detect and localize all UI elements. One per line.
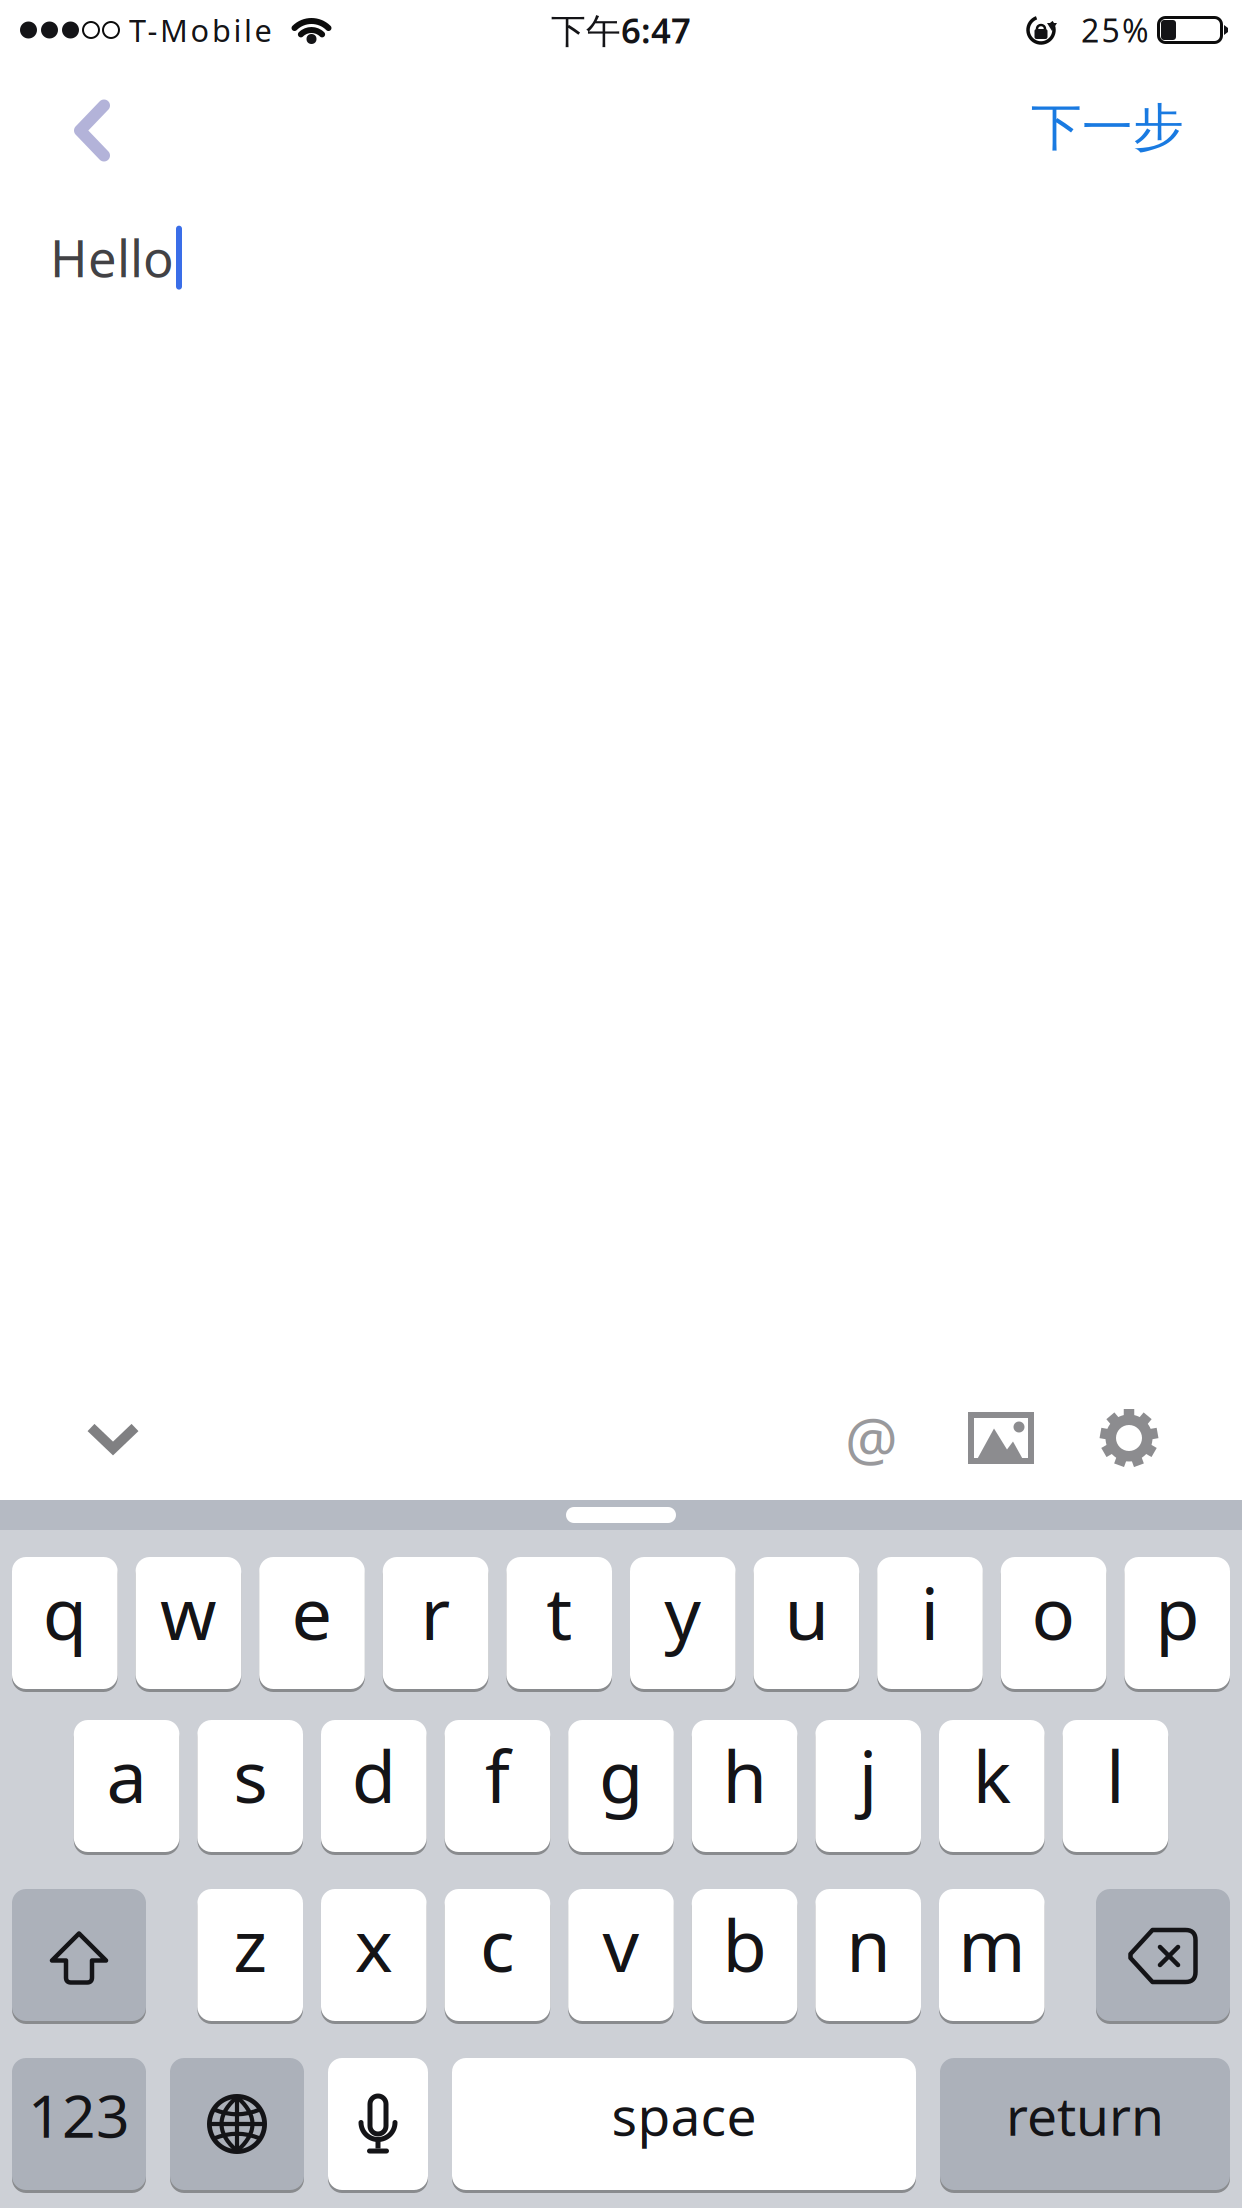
button[interactable]: l <box>1063 1720 1168 1852</box>
button[interactable]: w <box>136 1557 241 1689</box>
staticText: j <box>859 1727 878 1823</box>
staticText: q <box>43 1564 87 1660</box>
button[interactable]: k <box>939 1720 1045 1852</box>
staticText: Hello <box>50 224 174 291</box>
staticText: e <box>291 1564 332 1660</box>
button[interactable]: t <box>506 1557 612 1689</box>
button[interactable]: n <box>815 1889 921 2021</box>
staticText: v <box>602 1896 639 1992</box>
staticText: t <box>546 1564 572 1660</box>
staticText: i <box>920 1564 939 1660</box>
button[interactable]: 下一步 <box>1031 58 1242 159</box>
button[interactable]: e <box>259 1557 365 1689</box>
staticText: a <box>107 1727 147 1823</box>
staticText: s <box>233 1727 267 1823</box>
button[interactable]: x <box>321 1889 427 2021</box>
staticText: b <box>723 1896 767 1992</box>
staticText: 下一步 <box>1031 96 1184 159</box>
staticText: 123 <box>28 2076 130 2154</box>
staticText: 25% <box>1081 9 1149 51</box>
staticText: r <box>421 1564 451 1660</box>
button[interactable]: 照片 <box>898 1412 1034 1464</box>
staticText: space <box>611 2080 756 2150</box>
staticText: h <box>723 1727 767 1823</box>
button[interactable]: q <box>12 1557 118 1689</box>
staticText: y <box>664 1564 701 1660</box>
button[interactable]: o <box>1001 1557 1106 1689</box>
button[interactable]: r <box>383 1557 488 1689</box>
staticText: p <box>1155 1564 1199 1660</box>
button[interactable]: c <box>445 1889 550 2021</box>
button[interactable]: Shift <box>12 1889 146 2021</box>
button[interactable]: space <box>452 2058 916 2190</box>
staticText: T-Mobile <box>129 10 271 50</box>
staticText: return <box>1006 2080 1164 2150</box>
button[interactable]: 听写 <box>328 2058 428 2190</box>
button[interactable]: i <box>877 1557 983 1689</box>
staticText: k <box>973 1727 1011 1823</box>
button[interactable]: return <box>940 2058 1230 2190</box>
button[interactable]: 123 <box>12 2058 146 2190</box>
staticText: l <box>1106 1727 1125 1823</box>
button[interactable]: b <box>692 1889 797 2021</box>
button[interactable]: 设置 <box>1034 1409 1242 1467</box>
button[interactable]: y <box>630 1557 736 1689</box>
staticText: o <box>1032 1564 1076 1660</box>
button[interactable]: v <box>568 1889 674 2021</box>
button[interactable]: d <box>321 1720 427 1852</box>
button[interactable]: h <box>692 1720 797 1852</box>
button[interactable]: f <box>445 1720 550 1852</box>
button[interactable]: z <box>197 1889 303 2021</box>
button[interactable]: m <box>939 1889 1045 2021</box>
staticText: m <box>958 1896 1025 1992</box>
button[interactable]: j <box>815 1720 921 1852</box>
staticText: c <box>480 1896 515 1992</box>
button[interactable]: s <box>197 1720 303 1852</box>
staticText: z <box>233 1896 267 1992</box>
staticText: d <box>352 1727 396 1823</box>
staticText: x <box>355 1896 393 1992</box>
staticText: n <box>846 1896 890 1992</box>
button[interactable]: 删除 <box>1096 1889 1230 2021</box>
staticText: g <box>599 1727 643 1823</box>
button[interactable]: g <box>568 1720 674 1852</box>
staticText: 下午6:47 <box>551 7 691 53</box>
staticText: @ <box>845 1399 898 1477</box>
button[interactable]: 返回 <box>0 58 111 161</box>
button[interactable]: p <box>1124 1557 1230 1689</box>
staticText: f <box>485 1727 510 1823</box>
staticText: w <box>160 1564 217 1660</box>
button[interactable]: 切换输入法 <box>170 2058 304 2190</box>
button[interactable]: 提及 <box>845 1399 898 1477</box>
button[interactable]: u <box>754 1557 859 1689</box>
button[interactable]: a <box>74 1720 179 1852</box>
staticText: u <box>784 1564 828 1660</box>
button[interactable]: 收起键盘 <box>0 1392 140 1483</box>
